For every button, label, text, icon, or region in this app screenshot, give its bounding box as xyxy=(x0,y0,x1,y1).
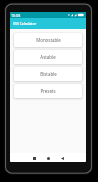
button[interactable]: Back xyxy=(58,154,67,162)
button[interactable]: Monostable xyxy=(14,33,82,47)
staticText: 555 Calculator xyxy=(13,21,37,26)
staticText: Bistable xyxy=(40,71,57,77)
button[interactable]: Recents xyxy=(30,154,39,162)
staticText: Astable xyxy=(40,54,56,60)
staticText: Presets xyxy=(40,88,56,94)
button[interactable]: Presets xyxy=(14,84,82,98)
button[interactable]: Bistable xyxy=(14,67,82,81)
button[interactable]: Astable xyxy=(14,50,82,64)
button[interactable]: Home xyxy=(44,154,53,162)
staticText: 10:08 xyxy=(11,13,21,18)
staticText: Monostable xyxy=(36,37,61,43)
